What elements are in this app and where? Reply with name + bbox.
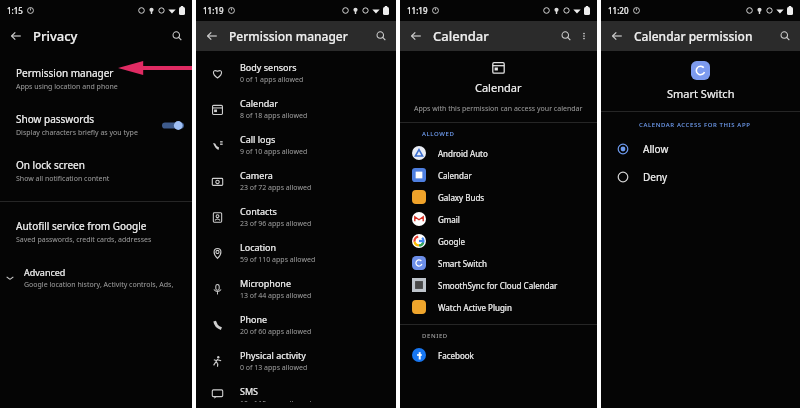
button[interactable]: Body sensors: [196, 55, 396, 91]
staticText: Deny: [643, 170, 668, 184]
button[interactable]: Physical activity: [196, 343, 396, 379]
staticText: 20 of 60 apps allowed: [240, 327, 312, 337]
staticText: Autofill service from Google: [16, 219, 147, 233]
staticText: 13 of 44 apps allowed: [240, 291, 312, 301]
staticText: Facebook: [438, 350, 474, 361]
button[interactable]: Google: [400, 230, 597, 252]
button[interactable]: Autofill service from Google: [0, 212, 192, 252]
staticText: 11:19: [203, 5, 224, 16]
staticText: Physical activity: [240, 349, 306, 361]
staticText: Gmail: [438, 214, 460, 225]
staticText: CALENDAR ACCESS FOR THIS APP: [639, 121, 751, 129]
button[interactable]: Call logs: [196, 127, 396, 163]
staticText: 0 of 1 apps allowed: [240, 75, 304, 85]
staticText: Galaxy Buds: [438, 192, 485, 203]
staticText: Calendar: [438, 170, 472, 181]
button[interactable]: SMS: [196, 379, 396, 408]
staticText: On lock screen: [16, 158, 85, 172]
button[interactable]: Deny: [601, 163, 800, 191]
staticText: Android Auto: [438, 148, 488, 159]
button[interactable]: Search: [556, 26, 576, 46]
button[interactable]: Search: [775, 26, 795, 46]
button[interactable]: SmoothSync for Cloud Calendar: [400, 274, 597, 296]
staticText: Privacy: [33, 27, 167, 45]
button[interactable]: Back: [405, 25, 427, 47]
staticText: 59 of 110 apps allowed: [240, 255, 316, 265]
staticText: ALLOWED: [422, 130, 455, 138]
button[interactable]: Android Auto: [400, 142, 597, 164]
button[interactable]: More options: [576, 28, 592, 44]
button[interactable]: On lock screen: [0, 151, 192, 191]
button[interactable]: Back: [201, 25, 223, 47]
staticText: Microphone: [240, 277, 291, 289]
staticText: Calendar permission: [634, 28, 775, 44]
button[interactable]: Back: [606, 25, 628, 47]
staticText: SMS: [240, 385, 259, 397]
staticText: Contacts: [240, 205, 277, 217]
button[interactable]: Show passwords: [0, 105, 192, 145]
button[interactable]: Gmail: [400, 208, 597, 230]
staticText: Allow: [643, 142, 669, 156]
button[interactable]: Contacts: [196, 199, 396, 235]
staticText: Smart Switch: [667, 86, 735, 101]
staticText: 10 of 15 apps allowed: [240, 399, 312, 402]
button[interactable]: Back: [5, 25, 27, 47]
staticText: Permission manager: [16, 66, 114, 80]
staticText: Body sensors: [240, 61, 297, 73]
button[interactable]: Calendar: [196, 91, 396, 127]
staticText: Saved passwords, credit cards, addresses: [16, 235, 152, 245]
staticText: 8 of 18 apps allowed: [240, 111, 308, 121]
staticText: Phone: [240, 313, 268, 325]
button[interactable]: Phone: [196, 307, 396, 343]
button[interactable]: [162, 120, 184, 131]
staticText: Apps using location and phone: [16, 82, 118, 92]
button[interactable]: Allow: [601, 135, 800, 163]
button[interactable]: Microphone: [196, 271, 396, 307]
staticText: Watch Active Plugin: [438, 302, 512, 313]
staticText: Calendar: [433, 27, 556, 45]
staticText: SmoothSync for Cloud Calendar: [438, 280, 558, 291]
button[interactable]: Facebook: [400, 344, 597, 366]
staticText: 9 of 10 apps allowed: [240, 147, 308, 157]
staticText: 11:19: [407, 5, 428, 16]
staticText: 23 of 96 apps allowed: [240, 219, 312, 229]
staticText: Show passwords: [16, 112, 95, 126]
staticText: Show all notification content: [16, 174, 110, 184]
button[interactable]: Galaxy Buds: [400, 186, 597, 208]
staticText: Call logs: [240, 133, 276, 145]
staticText: 11:20: [608, 5, 629, 16]
staticText: 0 of 13 apps allowed: [240, 363, 308, 373]
staticText: Location: [240, 241, 277, 253]
staticText: Calendar: [475, 80, 522, 95]
staticText: Permission manager: [229, 28, 371, 44]
button[interactable]: Watch Active Plugin: [400, 296, 597, 318]
button[interactable]: Smart Switch: [400, 252, 597, 274]
staticText: Camera: [240, 169, 273, 181]
staticText: Display characters briefly as you type: [16, 128, 138, 138]
button[interactable]: Permission manager: [0, 59, 192, 99]
button[interactable]: Calendar: [400, 164, 597, 186]
staticText: Smart Switch: [438, 258, 488, 269]
staticText: DENIED: [422, 332, 448, 340]
button[interactable]: Search: [167, 26, 187, 46]
staticText: 1:15: [7, 5, 23, 16]
button[interactable]: Advanced: [0, 260, 192, 296]
staticText: Calendar: [240, 97, 278, 109]
staticText: Advanced: [24, 266, 66, 278]
button[interactable]: Camera: [196, 163, 396, 199]
staticText: 23 of 72 apps allowed: [240, 183, 312, 193]
button[interactable]: Search: [371, 26, 391, 46]
staticText: Google: [438, 236, 465, 247]
staticText: Google location history, Activity contro…: [24, 280, 184, 290]
button[interactable]: Location: [196, 235, 396, 271]
staticText: Apps with this permission can access you…: [414, 104, 583, 114]
